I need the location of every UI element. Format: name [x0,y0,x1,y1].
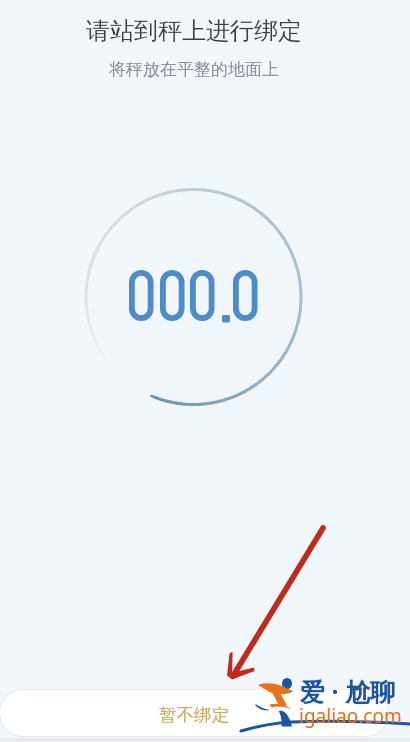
staticText: 暂不绑定 [159,704,229,726]
staticText: 请站到秤上进行绑定 [86,16,302,46]
staticText: 爱 · 尬聊 [300,674,396,708]
staticText: 将秤放在平整的地面上 [109,59,279,80]
staticText: igaliao.com [299,703,402,729]
button[interactable]: 暂不绑定 [0,690,388,736]
